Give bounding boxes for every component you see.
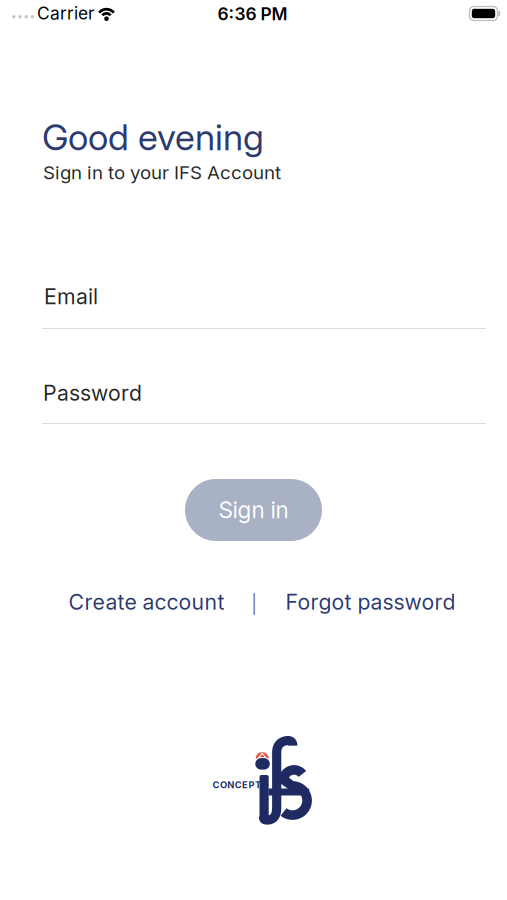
staticText: 6:36 PM <box>218 4 288 24</box>
staticText: | <box>251 593 257 615</box>
staticText: Create account <box>69 589 225 615</box>
staticText: Forgot password <box>286 589 456 615</box>
staticText: CONCEPT <box>212 779 261 790</box>
button[interactable]: Email <box>42 284 486 329</box>
button[interactable]: Password <box>42 380 486 424</box>
staticText: Sign in <box>218 497 288 523</box>
staticText: Good evening <box>42 116 264 158</box>
staticText: Password <box>43 380 142 406</box>
staticText: Sign in to your IFS Account <box>43 161 281 183</box>
button[interactable]: Forgot password <box>286 589 456 615</box>
staticText: Email <box>44 284 98 309</box>
button[interactable]: Create account <box>69 589 225 615</box>
staticText: Carrier <box>37 3 95 23</box>
button[interactable]: Sign in <box>185 479 322 541</box>
